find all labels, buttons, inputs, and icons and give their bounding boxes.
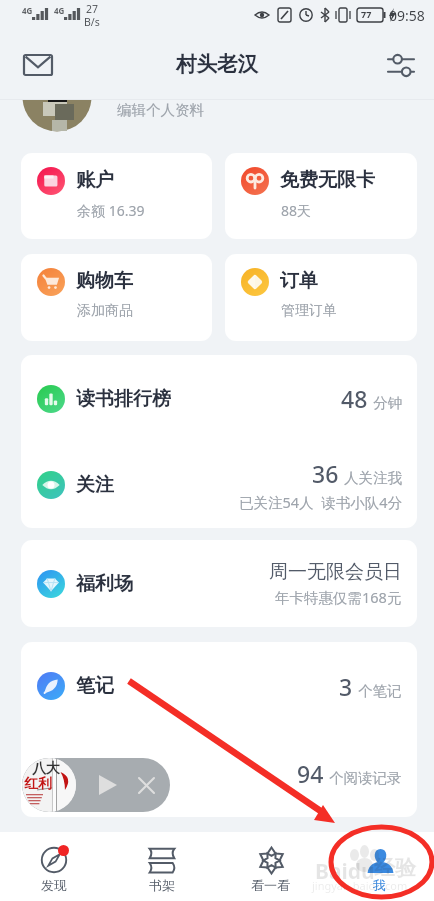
button[interactable]: 笔记: [21, 642, 417, 730]
staticText: 添加商品: [77, 302, 133, 320]
staticText: 个阅读记录: [329, 769, 402, 787]
button[interactable]: Settings: [379, 43, 423, 87]
staticText: 77: [361, 8, 372, 20]
staticText: 年卡特惠仅需168元: [275, 587, 402, 607]
staticText: 09:58: [389, 6, 425, 25]
staticText: 关注: [76, 473, 114, 497]
staticText: 购物车: [76, 269, 133, 293]
staticText: 订单: [280, 269, 318, 293]
button[interactable]: 看一看: [216, 832, 325, 901]
staticText: 已关注54人 读书小队4分: [239, 492, 402, 512]
staticText: 红利: [24, 775, 52, 793]
staticText: 编辑个人资料: [117, 101, 204, 119]
staticText: 周一无限会员日: [269, 560, 402, 584]
button[interactable]: 我: [325, 832, 434, 901]
button[interactable]: 书架: [108, 832, 216, 901]
staticText: 个笔记: [358, 682, 402, 700]
staticText: 94: [297, 758, 324, 789]
button[interactable]: 福利场: [21, 540, 417, 627]
staticText: 经验: [374, 855, 416, 881]
staticText: 4G: [54, 5, 65, 16]
staticText: 我: [373, 877, 386, 893]
staticText: B/s: [84, 15, 100, 29]
button[interactable]: 读书排行榜: [21, 355, 417, 442]
staticText: 管理订单: [281, 302, 337, 320]
staticText: 书架: [149, 877, 175, 893]
button[interactable]: 免费无限卡: [225, 153, 417, 239]
staticText: 48: [341, 383, 368, 414]
staticText: 阅读记录: [76, 762, 152, 786]
staticText: 免费无限卡: [280, 168, 375, 192]
button[interactable]: Messages: [16, 43, 60, 87]
staticText: 27: [86, 2, 99, 16]
button[interactable]: 订单: [225, 254, 417, 341]
button[interactable]: 发现: [0, 832, 108, 901]
staticText: 分钟: [373, 394, 402, 412]
button[interactable]: 关注: [21, 442, 417, 528]
staticText: 36: [312, 458, 339, 489]
staticText: Baidu: [315, 857, 375, 886]
staticText: 账户: [76, 168, 114, 192]
staticText: 88天: [281, 201, 312, 220]
button[interactable]: 购物车: [21, 254, 212, 341]
staticText: 读书排行榜: [76, 387, 171, 411]
button[interactable]: 阅读记录: [21, 730, 417, 817]
staticText: 八大: [32, 760, 60, 778]
button[interactable]: Floating video player: [22, 758, 170, 812]
staticText: 4G: [22, 5, 33, 16]
staticText: 人关注我: [344, 469, 402, 487]
staticText: 看一看: [251, 877, 290, 893]
staticText: 笔记: [76, 674, 114, 698]
staticText: 村头老汉: [176, 51, 258, 77]
staticText: jingyan.baidu.com: [312, 878, 408, 893]
staticText: 余额 16.39: [77, 201, 145, 220]
staticText: 发现: [41, 877, 67, 893]
staticText: 3: [339, 671, 353, 702]
staticText: 福利场: [76, 572, 133, 596]
button[interactable]: 账户: [21, 153, 212, 239]
